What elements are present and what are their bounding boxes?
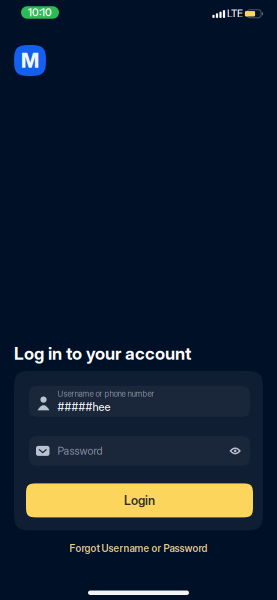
button[interactable]: Forgot Username or Password <box>69 536 207 560</box>
staticText: Login <box>124 493 155 508</box>
staticText: M <box>21 48 39 73</box>
staticText: Username or phone number <box>57 389 154 399</box>
staticText: #####hee <box>57 400 110 414</box>
staticText: 10:10 <box>28 6 52 19</box>
staticText: Log in to your account <box>14 343 191 364</box>
button[interactable]: Show password <box>224 440 250 462</box>
staticText: LTE <box>227 8 243 20</box>
button[interactable]: Login <box>26 483 253 517</box>
staticText: Password <box>57 444 102 457</box>
staticText: Forgot Username or Password <box>69 542 207 554</box>
